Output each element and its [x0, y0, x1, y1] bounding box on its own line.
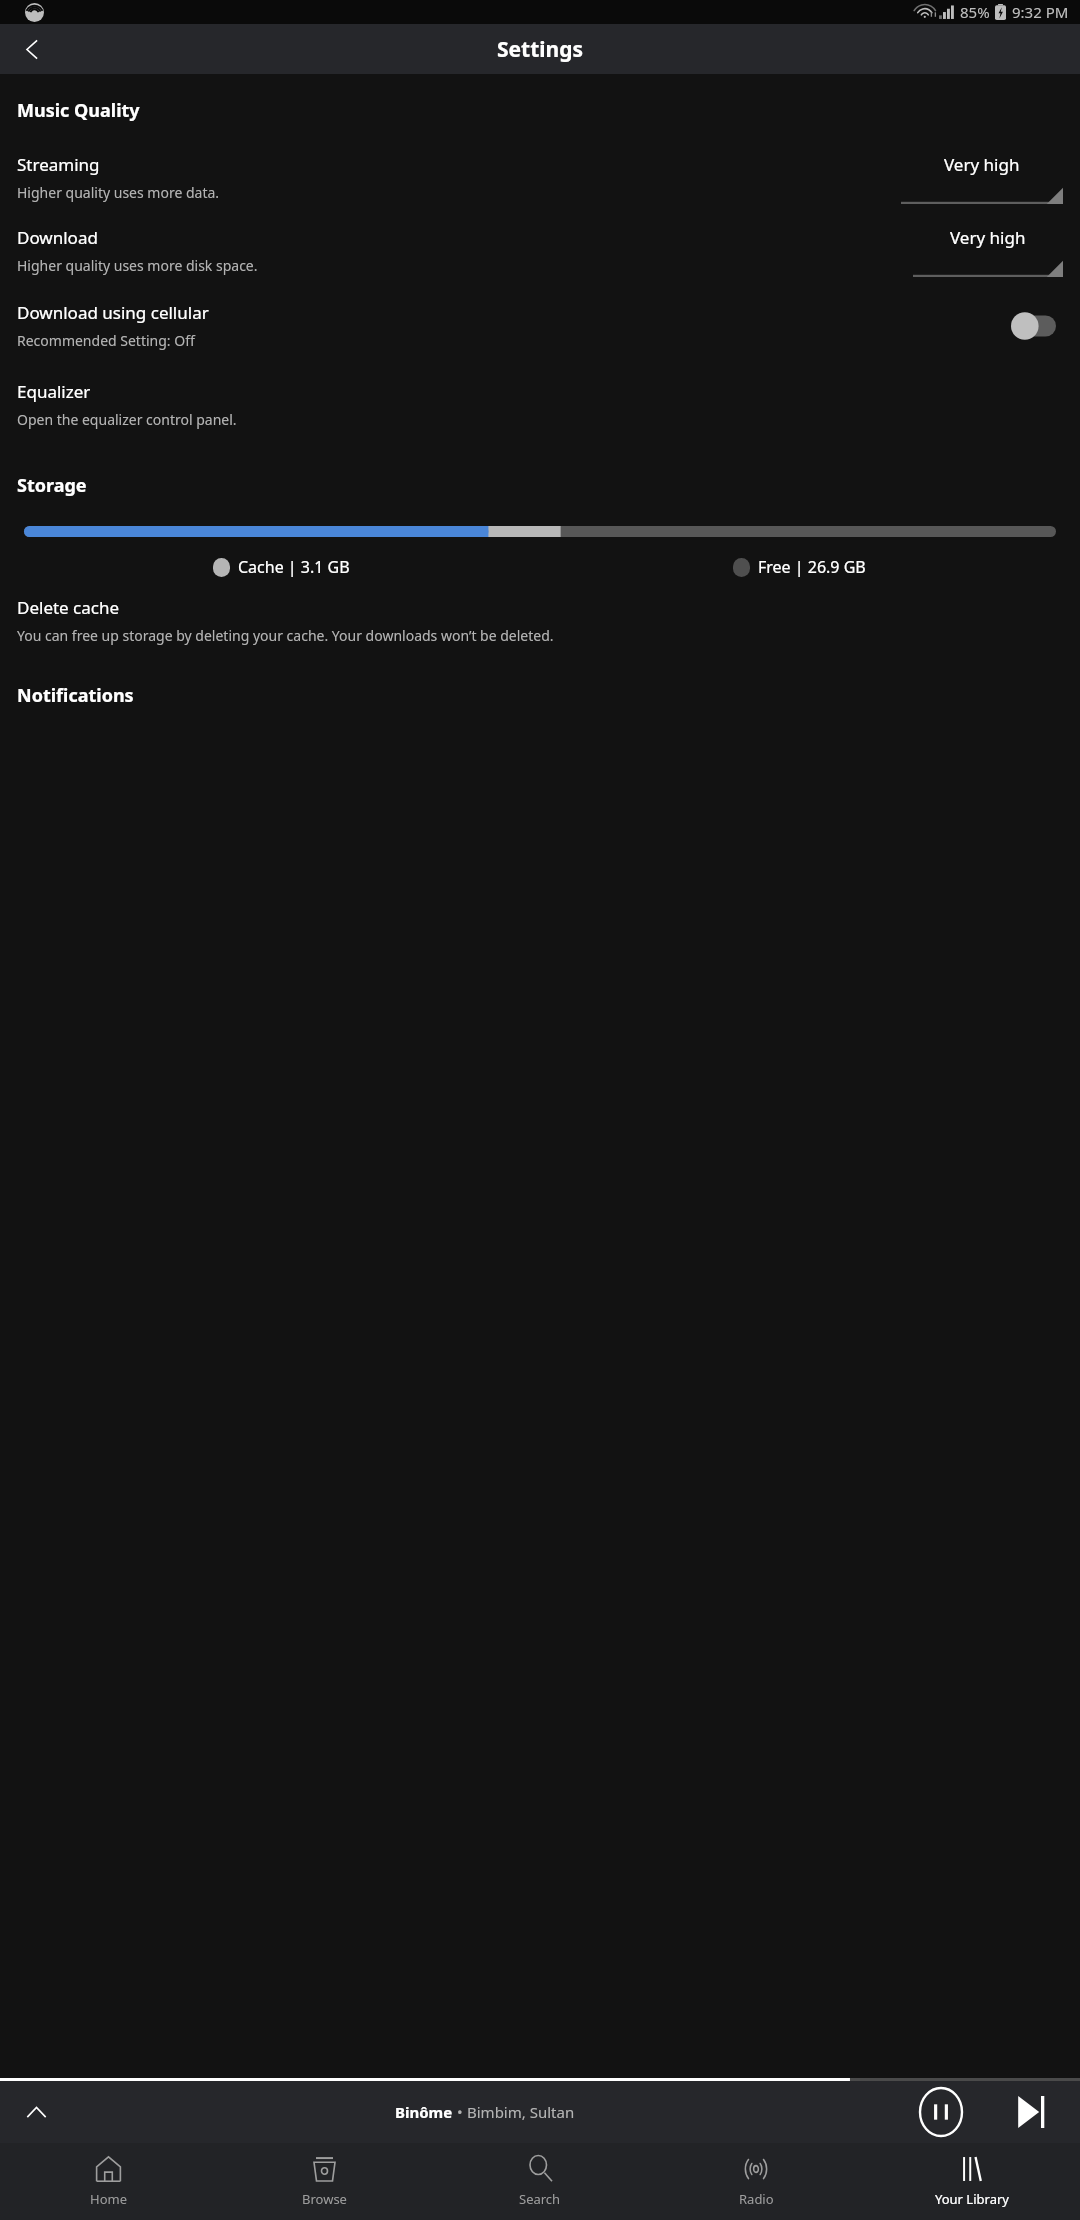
button[interactable]: Back: [8, 25, 56, 73]
staticText: Higher quality uses more data.: [17, 183, 220, 202]
button[interactable]: Pause: [898, 2081, 984, 2143]
staticText: Delete cache: [17, 596, 120, 619]
staticText: Settings: [497, 35, 584, 64]
button[interactable]: Radio: [648, 2143, 864, 2220]
staticText: Search: [519, 2190, 561, 2208]
button[interactable]: Binôme: [72, 2102, 898, 2122]
staticText: Notifications: [17, 683, 134, 708]
button[interactable]: Browse: [216, 2143, 432, 2220]
staticText: Your Library: [935, 2190, 1009, 2208]
button[interactable]: Home: [0, 2143, 216, 2220]
staticText: Music Quality: [17, 98, 140, 123]
staticText: Recommended Setting: Off: [17, 331, 195, 350]
staticText: Download: [17, 226, 98, 249]
staticText: Home: [90, 2190, 127, 2208]
staticText: Download using cellular: [17, 301, 209, 324]
button[interactable]: Download: [0, 226, 1080, 277]
staticText: 85%: [960, 2, 990, 22]
staticText: Open the equalizer control panel.: [17, 410, 237, 429]
staticText: Radio: [739, 2190, 774, 2208]
staticText: Binôme: [395, 2102, 453, 2122]
staticText: Equalizer: [17, 380, 91, 403]
staticText: •: [453, 2102, 467, 2122]
button[interactable]: Next track: [984, 2081, 1080, 2143]
staticText: Storage: [17, 473, 87, 498]
staticText: Streaming: [17, 153, 100, 176]
button[interactable]: Streaming: [0, 153, 1080, 204]
button[interactable]: Your Library: [864, 2143, 1080, 2220]
button[interactable]: Expand player: [0, 2081, 72, 2143]
staticText: You can free up storage by deleting your…: [17, 626, 554, 645]
staticText: Cache | 3.1 GB: [238, 556, 350, 578]
staticText: Free | 26.9 GB: [758, 556, 866, 578]
staticText: Bimbim, Sultan: [467, 2102, 575, 2122]
staticText: 9:32 PM: [1012, 2, 1069, 22]
staticText: Browse: [302, 2190, 347, 2208]
button[interactable]: Search: [432, 2143, 648, 2220]
button[interactable]: Equalizer: [0, 380, 1080, 429]
staticText: Very high: [944, 153, 1020, 176]
staticText: Higher quality uses more disk space.: [17, 256, 258, 275]
staticText: Very high: [950, 226, 1026, 249]
button[interactable]: Delete cache: [0, 596, 1080, 645]
button[interactable]: Download using cellular: [0, 301, 1080, 350]
